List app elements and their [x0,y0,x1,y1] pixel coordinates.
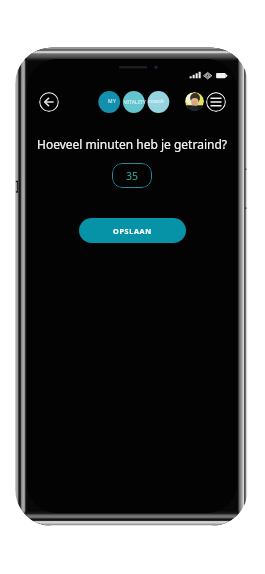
staticText: coach [148,97,164,105]
button[interactable]: 35 [112,163,152,188]
staticText: OPSLAAN [113,226,152,236]
staticText: VITALITY [124,98,146,105]
staticText: 35 [126,169,139,183]
button[interactable]: My Vitality Coach [98,91,170,113]
button[interactable]: Back [39,92,59,112]
staticText: MY [108,98,117,105]
button[interactable]: Profile [185,92,204,111]
staticText: Hoeveel minuten heb je getraind? [27,136,237,152]
button[interactable]: OPSLAAN [79,218,186,243]
button[interactable]: Menu [206,92,226,112]
